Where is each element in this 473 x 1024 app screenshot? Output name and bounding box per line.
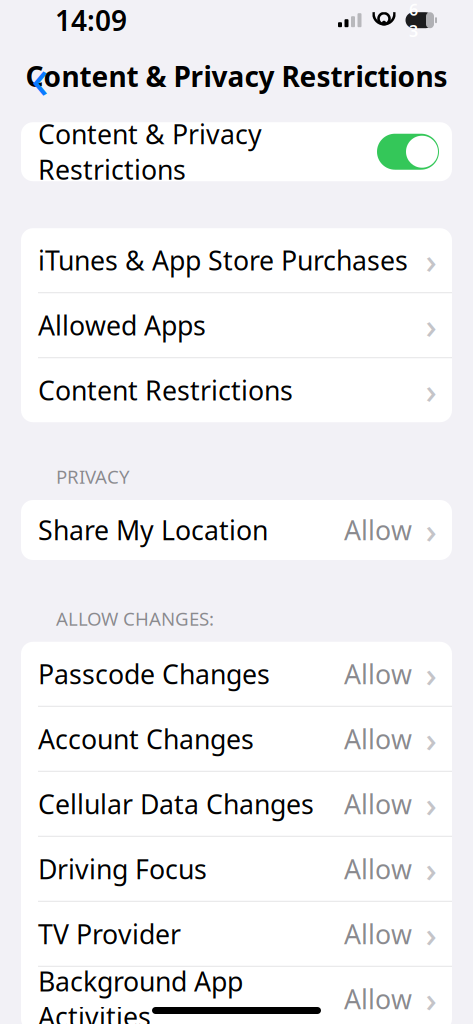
staticText: ›	[425, 911, 436, 957]
staticText: Content & Privacy Restrictions	[25, 58, 447, 95]
staticText: Background App Activities	[38, 963, 243, 1024]
staticText: Allow	[344, 916, 412, 951]
staticText: Share My Location	[38, 512, 268, 548]
staticText: Driving Focus	[38, 851, 207, 886]
staticText: ALLOW CHANGES:	[56, 606, 214, 631]
staticText: Cellular Data Changes	[38, 786, 314, 821]
staticText: ›	[425, 367, 436, 413]
staticText: ›	[425, 781, 436, 827]
staticText: Allow	[344, 721, 412, 756]
staticText: ›	[425, 302, 436, 348]
staticText: Allow	[344, 981, 412, 1016]
button[interactable]: Driving Focus	[21, 837, 452, 901]
staticText: Allow	[344, 512, 412, 548]
button[interactable]: Account Changes	[21, 707, 452, 771]
staticText: iTunes & App Store Purchases	[38, 242, 408, 278]
button[interactable]: Back	[18, 54, 62, 98]
staticText: 63	[409, 0, 418, 41]
staticText: Allow	[344, 851, 412, 886]
button[interactable]: Allowed Apps	[21, 293, 452, 357]
staticText: Content Restrictions	[38, 372, 293, 408]
button[interactable]: Content Restrictions	[21, 358, 452, 422]
staticText: ›	[425, 976, 436, 1022]
staticText: Allow	[344, 786, 412, 821]
button[interactable]: TV Provider	[21, 902, 452, 966]
staticText: Account Changes	[38, 721, 254, 756]
staticText: Allowed Apps	[38, 307, 206, 343]
button[interactable]: Share My Location	[21, 500, 452, 560]
staticText: Passcode Changes	[38, 656, 270, 691]
staticText: ‹	[31, 37, 49, 115]
button[interactable]: Background App Activities	[21, 967, 452, 1024]
staticText: 14:09	[55, 2, 127, 39]
staticText: ›	[425, 507, 436, 553]
staticText: Allow	[344, 656, 412, 691]
button[interactable]: Content & Privacy Restrictions toggle	[377, 134, 439, 170]
staticText: TV Provider	[38, 916, 181, 951]
staticText: PRIVACY	[56, 464, 130, 489]
button[interactable]: Passcode Changes	[21, 642, 452, 706]
button[interactable]: iTunes & App Store Purchases	[21, 228, 452, 292]
staticText: Content & Privacy Restrictions	[38, 116, 262, 187]
staticText: ›	[425, 716, 436, 762]
staticText: ›	[425, 846, 436, 892]
staticText: ›	[425, 237, 436, 283]
staticText: ›	[425, 651, 436, 697]
button[interactable]: Cellular Data Changes	[21, 772, 452, 836]
